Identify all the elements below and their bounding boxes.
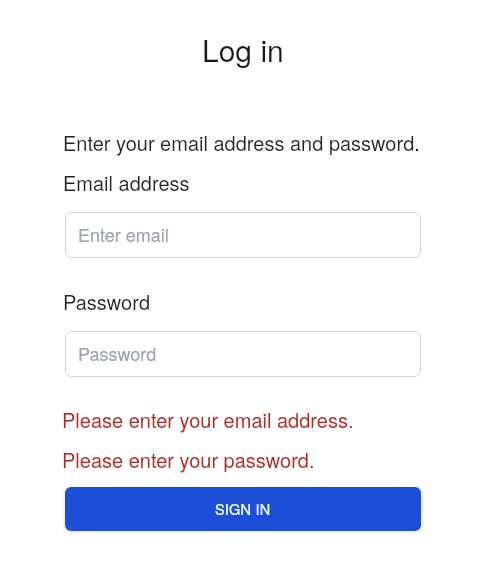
staticText: Password	[78, 340, 157, 366]
staticText: Log in	[202, 28, 284, 71]
button[interactable]: Password	[65, 331, 421, 377]
button[interactable]: SIGN IN	[65, 487, 421, 531]
staticText: SIGN IN	[215, 498, 271, 519]
staticText: Enter your email address and password.	[63, 128, 420, 157]
staticText: Enter email	[78, 221, 169, 247]
staticText: Please enter your email address.	[62, 405, 354, 434]
staticText: Please enter your password.	[62, 445, 315, 474]
staticText: Email address	[63, 168, 190, 197]
button[interactable]: Enter email	[65, 212, 421, 258]
staticText: Password	[63, 287, 150, 316]
